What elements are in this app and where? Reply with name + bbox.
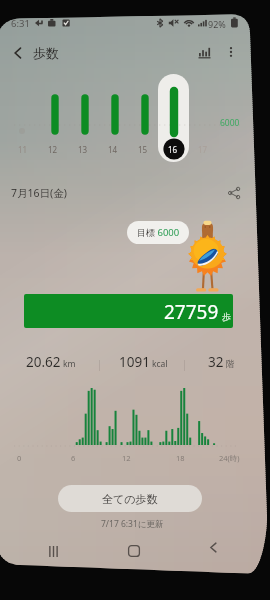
staticText: 11 bbox=[18, 144, 28, 155]
staticText: 27759 bbox=[164, 299, 219, 325]
staticText: kcal bbox=[152, 358, 168, 370]
staticText: 15 bbox=[138, 144, 148, 155]
staticText: 32 bbox=[208, 353, 224, 371]
button[interactable]: Trends bbox=[193, 41, 215, 63]
button[interactable]: Home bbox=[119, 536, 148, 565]
button[interactable]: 全ての歩数 bbox=[58, 485, 202, 512]
staticText: 12 bbox=[48, 144, 58, 155]
staticText: 7/17 6:31に更新 bbox=[101, 518, 164, 530]
button[interactable]: 20.62 bbox=[26, 353, 74, 371]
staticText: 16 bbox=[168, 144, 178, 155]
button[interactable]: More options bbox=[220, 41, 242, 63]
staticText: 階 bbox=[226, 359, 235, 370]
staticText: 12 bbox=[122, 453, 131, 463]
staticText: 全ての歩数 bbox=[102, 492, 158, 506]
button[interactable]: Recents bbox=[39, 537, 68, 566]
staticText: 目標 bbox=[137, 227, 155, 238]
staticText: 歩数 bbox=[33, 45, 59, 61]
button[interactable]: Back bbox=[199, 533, 228, 562]
button[interactable]: 27759 bbox=[24, 294, 233, 328]
staticText: 6000 bbox=[155, 226, 180, 239]
staticText: 13 bbox=[78, 144, 88, 155]
staticText: 92% bbox=[208, 18, 226, 30]
button[interactable]: Share bbox=[223, 182, 244, 203]
staticText: 18 bbox=[176, 453, 185, 463]
button[interactable]: 1091 bbox=[119, 353, 166, 371]
staticText: 6:31 bbox=[11, 17, 30, 30]
button[interactable]: 32 bbox=[208, 353, 233, 371]
staticText: 歩 bbox=[222, 311, 231, 322]
staticText: 17 bbox=[198, 144, 208, 155]
staticText: 6 bbox=[71, 453, 76, 463]
staticText: 6000 bbox=[220, 117, 240, 129]
button[interactable]: 目標 bbox=[127, 221, 189, 244]
staticText: km bbox=[63, 358, 76, 370]
staticText: 0 bbox=[17, 453, 22, 463]
staticText: 20.62 bbox=[26, 353, 61, 371]
button[interactable]: Back bbox=[6, 41, 30, 65]
staticText: 7月16日(金) bbox=[11, 186, 67, 200]
staticText: 14 bbox=[108, 144, 118, 155]
staticText: 24(時) bbox=[219, 453, 240, 463]
staticText: 1091 bbox=[119, 353, 150, 371]
